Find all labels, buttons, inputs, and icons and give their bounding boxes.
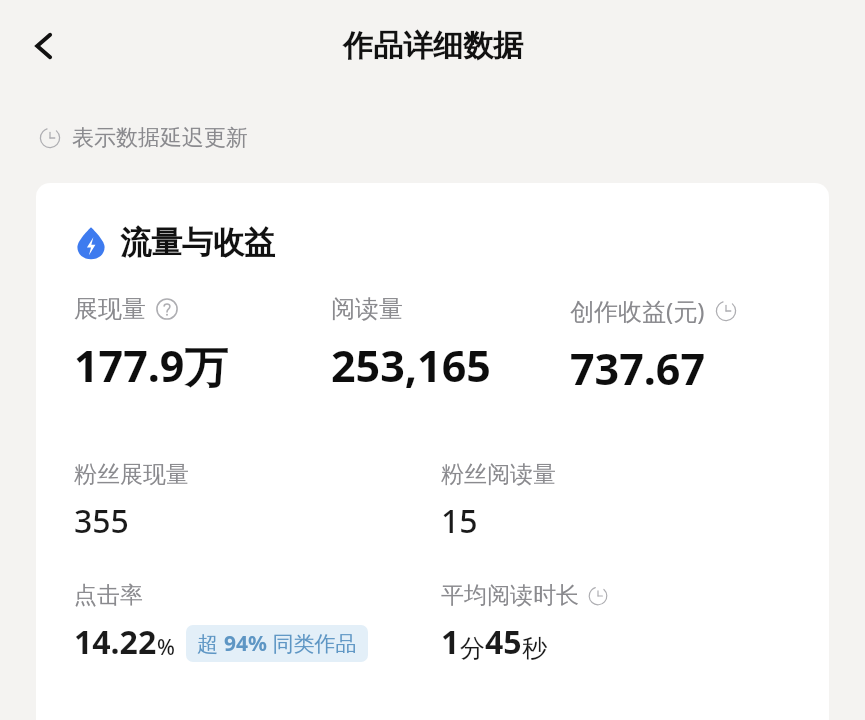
staticText: 流量与收益 [120, 223, 275, 262]
staticText: 253,165 [331, 336, 491, 395]
staticText: 创作收益(元) [570, 294, 705, 327]
button[interactable]: 粉丝阅读量 [441, 460, 809, 543]
button[interactable]: 粉丝展现量 [74, 460, 441, 543]
staticText: 分 [460, 633, 485, 664]
staticText: 超 [197, 629, 224, 658]
staticText: 点击率 [74, 581, 143, 610]
staticText: 355 [74, 499, 129, 543]
button[interactable]: 展现量 [74, 294, 331, 395]
staticText: 秒 [522, 633, 547, 664]
staticText: 177.9万 [74, 336, 228, 395]
staticText: 粉丝阅读量 [441, 460, 556, 489]
staticText: % [157, 633, 175, 662]
staticText: 737.67 [570, 339, 706, 398]
button[interactable]: 阅读量 [331, 294, 570, 395]
staticText: 14.22 [74, 620, 157, 664]
staticText: 展现量 [74, 294, 146, 324]
staticText: 粉丝展现量 [74, 460, 189, 489]
staticText: 45 [485, 620, 522, 664]
staticText: 同类作品 [267, 629, 357, 658]
staticText: 阅读量 [331, 294, 403, 324]
button[interactable]: Back [14, 16, 74, 76]
staticText: 94% [224, 629, 267, 658]
button[interactable]: 创作收益(元) [570, 294, 809, 398]
staticText: 平均阅读时长 [441, 581, 579, 610]
button[interactable]: 超 [186, 625, 368, 662]
staticText: 表示数据延迟更新 [72, 124, 248, 152]
staticText: 1 [441, 620, 460, 664]
staticText: 作品详细数据 [343, 27, 523, 65]
staticText: 15 [441, 499, 478, 543]
